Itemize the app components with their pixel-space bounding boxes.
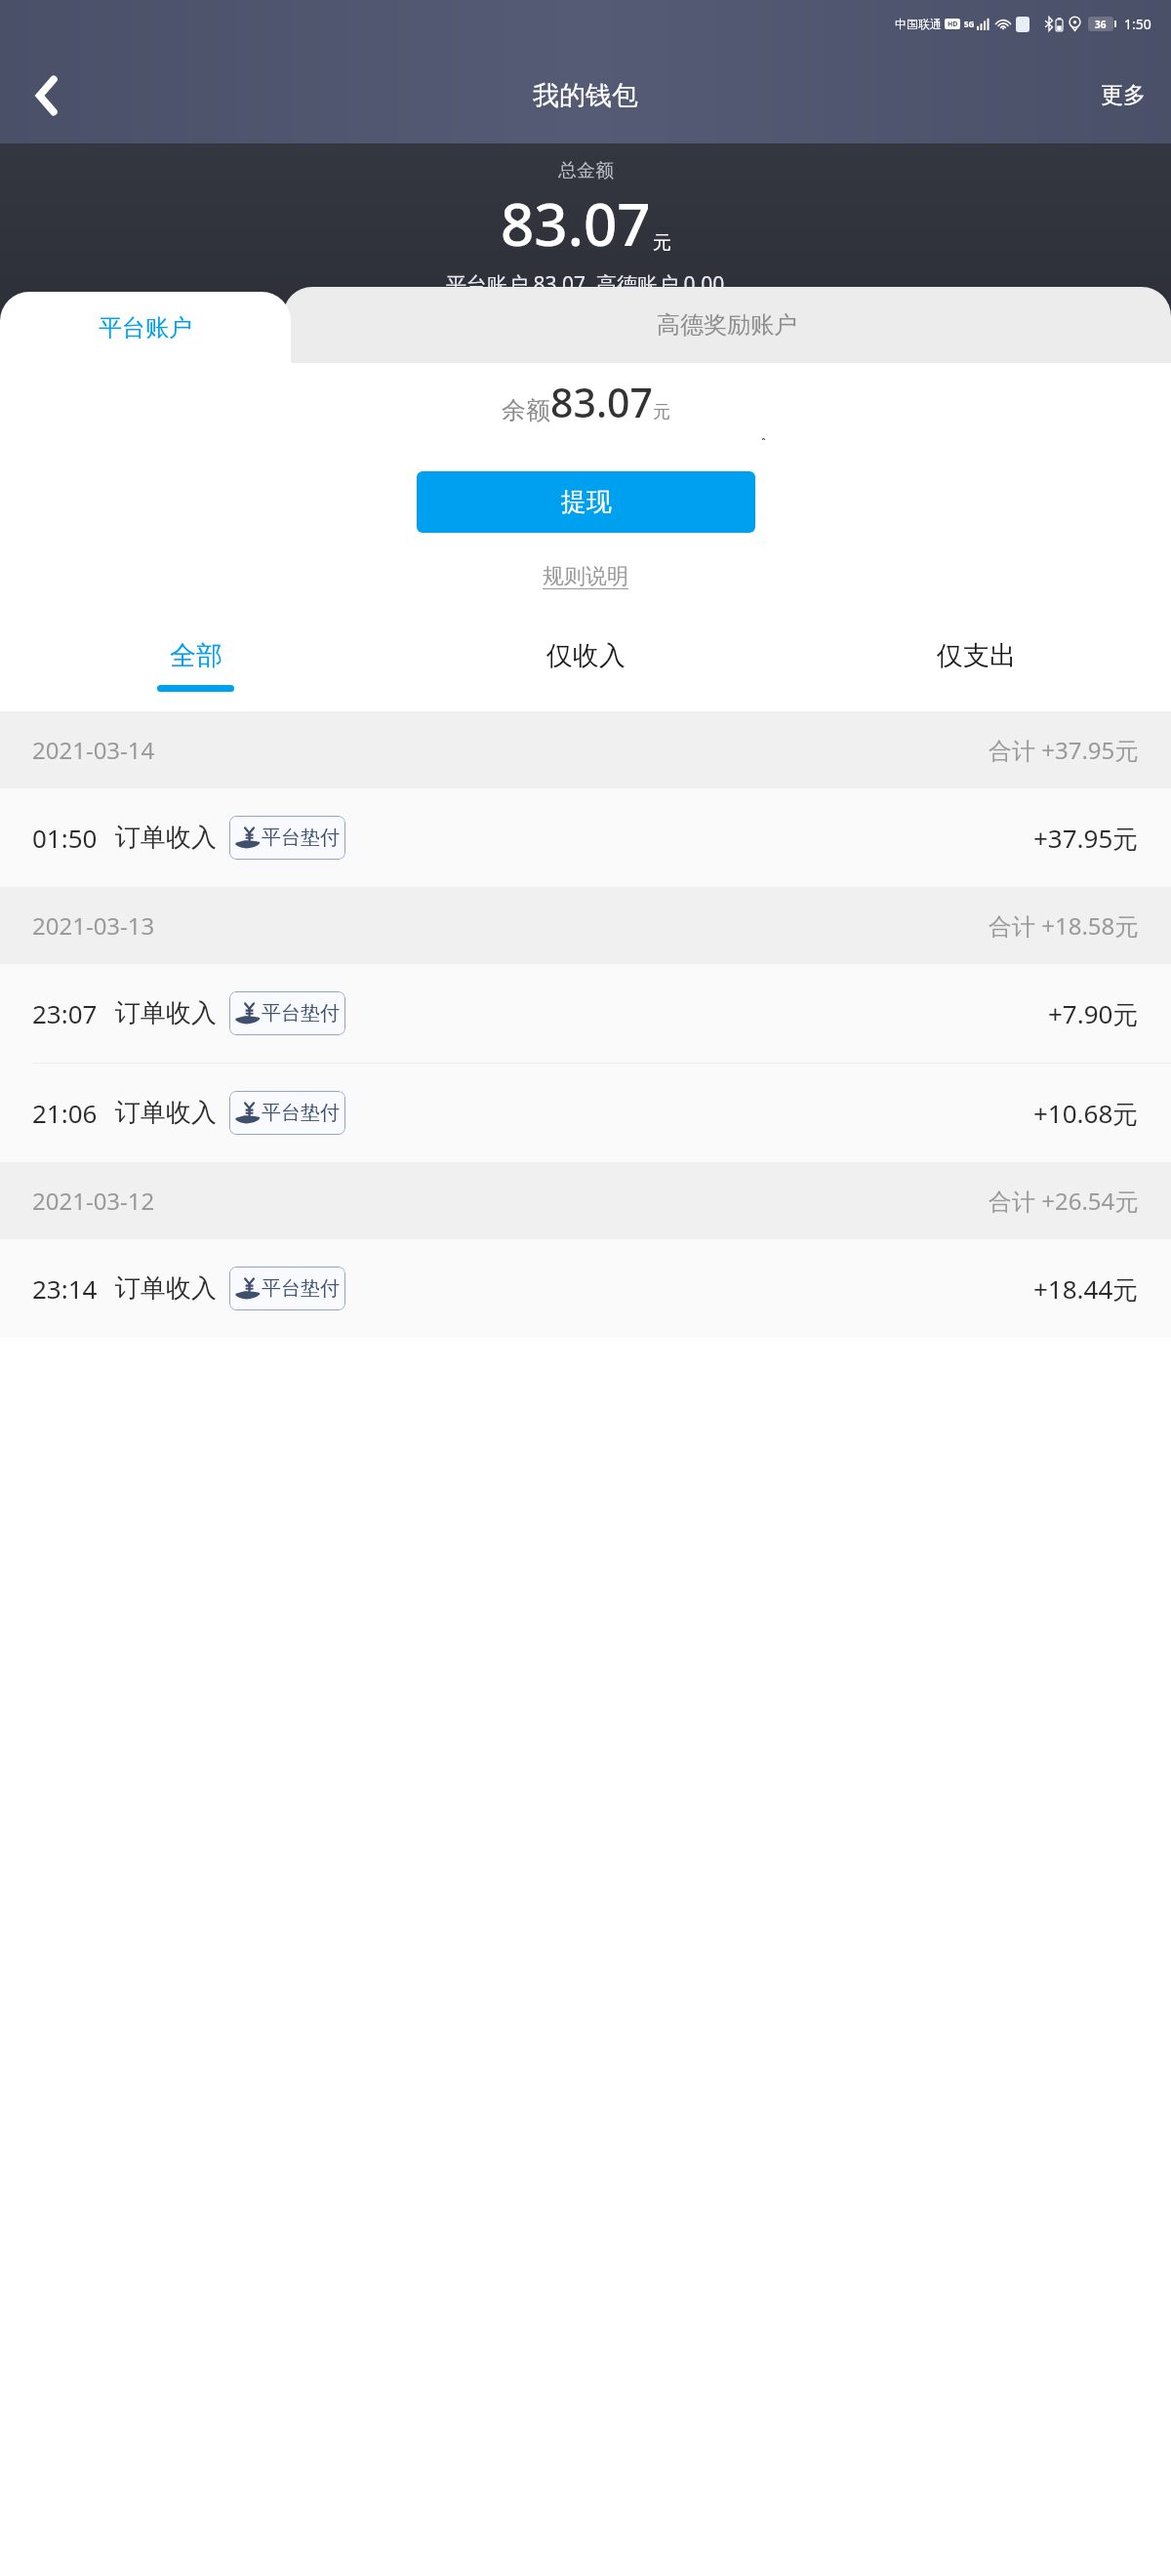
staticText: 83.07 bbox=[550, 375, 653, 429]
staticText: 2021-03-12 bbox=[32, 1185, 155, 1217]
staticText: 平台账户 83.07 高德账户 0.00 bbox=[446, 270, 725, 287]
staticText: 平台垫付 bbox=[262, 1001, 340, 1026]
button[interactable]: 规则说明 bbox=[537, 563, 634, 590]
staticText: +18.44元 bbox=[1033, 1271, 1139, 1307]
staticText: ? bbox=[760, 439, 767, 440]
button[interactable]: Help bbox=[750, 439, 776, 440]
staticText: 1:50 bbox=[1124, 15, 1151, 33]
staticText: 高德奖励账户 bbox=[657, 310, 797, 340]
button[interactable]: 01:50 bbox=[0, 788, 1171, 887]
staticText: HD bbox=[948, 20, 958, 29]
staticText: +37.95元 bbox=[1033, 821, 1139, 856]
staticText: 订单收入 bbox=[115, 1097, 217, 1129]
staticText: 更多 bbox=[1101, 81, 1146, 109]
button[interactable]: Back bbox=[12, 60, 82, 131]
staticText: 中国联通 bbox=[895, 17, 942, 31]
button[interactable]: 23:07 bbox=[0, 964, 1171, 1063]
staticText: 21:06 bbox=[32, 1096, 98, 1130]
staticText: 2021-03-13 bbox=[32, 909, 155, 942]
staticText: 23:14 bbox=[32, 1271, 98, 1306]
staticText: 83.07 bbox=[501, 183, 651, 263]
staticText: 合计 +37.95元 bbox=[989, 734, 1139, 766]
staticText: 元 bbox=[653, 231, 671, 255]
button[interactable]: 21:06 bbox=[0, 1064, 1171, 1162]
button[interactable]: 提现 bbox=[417, 471, 755, 533]
staticText: 元 bbox=[653, 401, 670, 423]
staticText: 全部 bbox=[170, 639, 222, 672]
button[interactable]: 高德奖励账户 bbox=[283, 287, 1171, 363]
button[interactable]: 23:14 bbox=[0, 1239, 1171, 1338]
button[interactable]: 平台账户 bbox=[0, 292, 291, 363]
staticText: 5G bbox=[964, 19, 975, 29]
button[interactable]: 更多 bbox=[1093, 69, 1153, 121]
staticText: 规则说明 bbox=[543, 563, 628, 590]
staticText: 订单收入 bbox=[115, 997, 217, 1029]
staticText: 01:50 bbox=[32, 821, 98, 855]
staticText: 平台垫付 bbox=[262, 1276, 340, 1301]
staticText: 余额 bbox=[502, 395, 550, 425]
staticText: 23:07 bbox=[32, 996, 98, 1030]
staticText: 合计 +18.58元 bbox=[989, 909, 1139, 942]
staticText: 总金额 bbox=[558, 159, 614, 182]
staticText: +10.68元 bbox=[1033, 1096, 1139, 1131]
button[interactable]: 全部 bbox=[0, 619, 390, 711]
staticText: 我的钱包 bbox=[533, 79, 638, 112]
staticText: 平台账户 bbox=[99, 313, 192, 342]
staticText: 订单收入 bbox=[115, 1272, 217, 1305]
staticText: 提现 bbox=[561, 486, 612, 518]
staticText: +7.90元 bbox=[1048, 996, 1139, 1031]
staticText: 仅收入 bbox=[546, 639, 626, 672]
button[interactable]: 仅收入 bbox=[390, 619, 781, 711]
staticText: 平台垫付 bbox=[262, 1101, 340, 1125]
staticText: 36 bbox=[1095, 18, 1107, 31]
staticText: 2021-03-14 bbox=[32, 734, 155, 766]
staticText: 仅支出 bbox=[937, 639, 1016, 672]
button[interactable]: 仅支出 bbox=[781, 619, 1171, 711]
staticText: 订单收入 bbox=[115, 822, 217, 854]
staticText: 平台垫付 bbox=[262, 825, 340, 850]
staticText: 合计 +26.54元 bbox=[989, 1185, 1139, 1217]
